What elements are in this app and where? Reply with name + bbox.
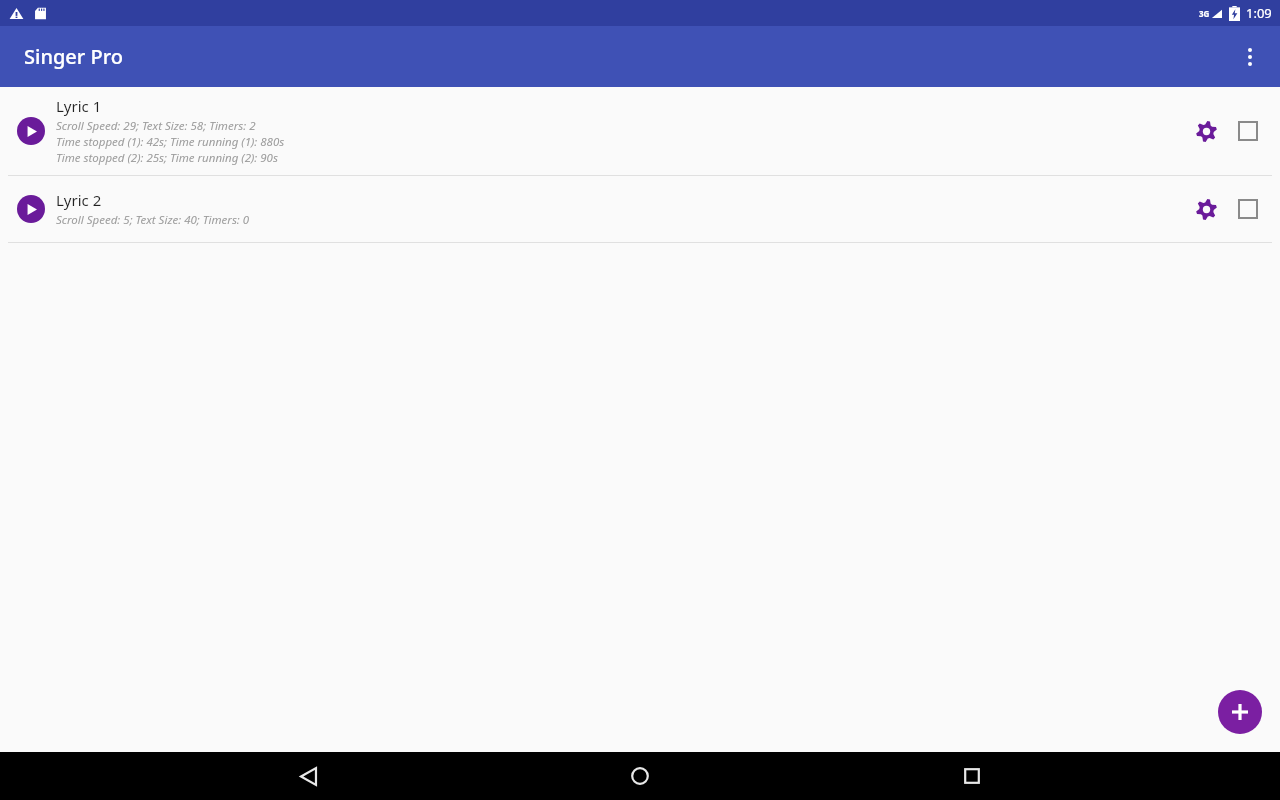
button[interactable]: More options [1228, 35, 1272, 79]
staticText: Lyric 2 [56, 190, 102, 210]
button[interactable]: Settings for Lyric 1 [1186, 111, 1226, 151]
staticText: Scroll Speed: 29; Text Size: 58; Timers:… [56, 118, 256, 134]
button[interactable]: Play Lyric 1 [0, 87, 1280, 175]
button[interactable]: Recent apps [948, 752, 996, 800]
button[interactable]: Select Lyric 1 [1228, 111, 1268, 151]
button[interactable]: Play Lyric 2 [0, 176, 1280, 242]
staticText: Time stopped (1): 42s; Time running (1):… [56, 134, 285, 150]
staticText: 3G [1199, 8, 1210, 19]
button[interactable]: Play Lyric 1 [17, 117, 45, 145]
button[interactable]: Home [616, 752, 664, 800]
button[interactable]: Settings for Lyric 2 [1186, 189, 1226, 229]
staticText: Scroll Speed: 5; Text Size: 40; Timers: … [56, 212, 250, 228]
staticText: Time stopped (2): 25s; Time running (2):… [56, 150, 278, 166]
button[interactable]: Play Lyric 2 [17, 195, 45, 223]
button[interactable]: Add [1218, 690, 1262, 734]
staticText: Singer Pro [24, 43, 123, 70]
staticText: 1:09 [1246, 4, 1272, 22]
button[interactable]: Select Lyric 2 [1228, 189, 1268, 229]
staticText: Lyric 1 [56, 96, 102, 116]
button[interactable]: Back [284, 752, 332, 800]
